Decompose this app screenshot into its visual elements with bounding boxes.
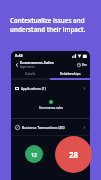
button[interactable]: Details <box>11 70 50 78</box>
button[interactable]: Applications (1) <box>11 82 90 94</box>
staticText: 28 <box>69 149 79 160</box>
staticText: 8m <box>82 63 87 67</box>
staticText: Applications (1) <box>21 86 46 91</box>
button[interactable]: Ecommerce-sales <box>11 100 90 110</box>
button[interactable]: Back <box>13 61 20 68</box>
staticText: Ecommerce-sales <box>39 106 63 110</box>
button[interactable]: 12 <box>25 145 43 163</box>
staticText: 12 <box>31 151 37 158</box>
button[interactable]: Time range <box>77 63 87 67</box>
staticText: Contextualize issues and understand thei… <box>10 16 88 34</box>
staticText: Details <box>25 72 36 76</box>
staticText: Relationships <box>60 72 81 76</box>
staticText: 8:48 <box>15 53 23 58</box>
staticText: Application <box>20 65 35 69</box>
button[interactable]: Business Transactions (40) <box>11 119 90 135</box>
button[interactable]: Relationships <box>50 70 90 78</box>
staticText: Business Transactions (40) <box>22 125 65 130</box>
staticText: Ecommerce-Sales <box>20 60 54 65</box>
button[interactable]: 28 <box>55 136 92 173</box>
